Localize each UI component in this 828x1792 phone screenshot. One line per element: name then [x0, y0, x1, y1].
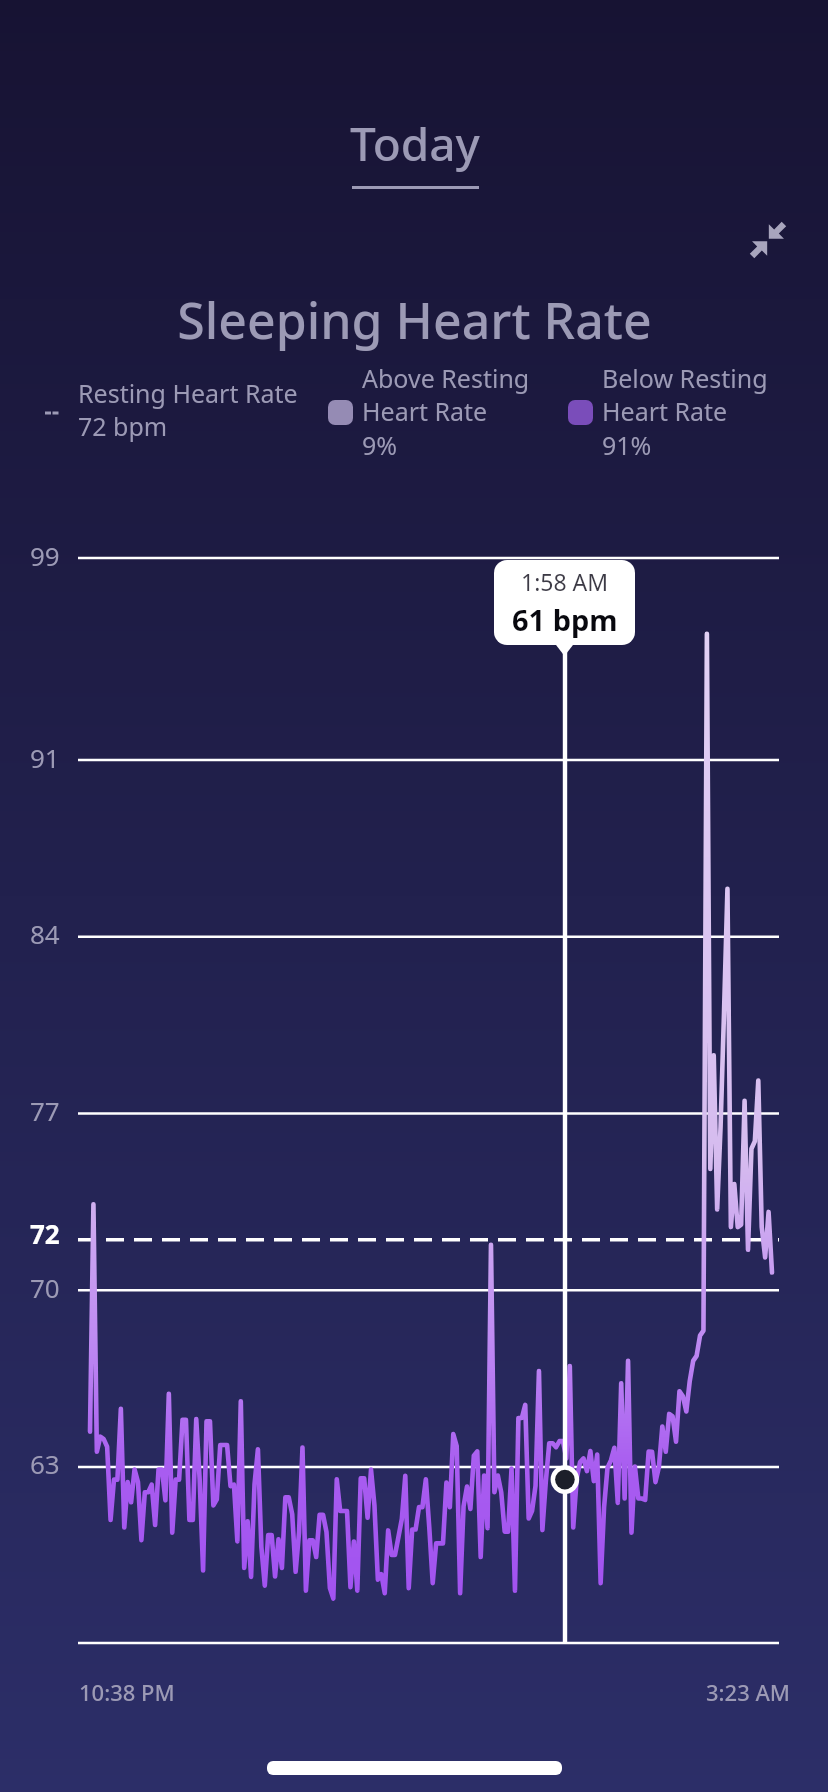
staticText: 10:38 PM	[79, 1677, 175, 1707]
staticText: 63	[30, 1446, 60, 1481]
button[interactable]: Today	[350, 112, 480, 189]
staticText: 77	[30, 1093, 60, 1128]
button[interactable]: Resting Heart Rate 72 bpm	[78, 376, 298, 444]
staticText: 91	[30, 740, 60, 775]
staticText: Sleeping Heart Rate	[177, 286, 652, 354]
staticText: 84	[30, 916, 60, 951]
staticText: 70	[30, 1270, 60, 1305]
staticText: Above Resting Heart Rate 9%	[362, 361, 530, 463]
staticText: Below Resting Heart Rate 91%	[602, 361, 768, 463]
button[interactable]: Collapse	[730, 202, 806, 278]
staticText: 1:58 AM	[521, 566, 609, 597]
staticText: 99	[30, 538, 60, 573]
staticText: 72	[30, 1216, 60, 1251]
staticText: Today	[350, 112, 480, 175]
staticText: 3:23 AM	[706, 1677, 791, 1707]
staticText: 61 bpm	[512, 600, 618, 639]
